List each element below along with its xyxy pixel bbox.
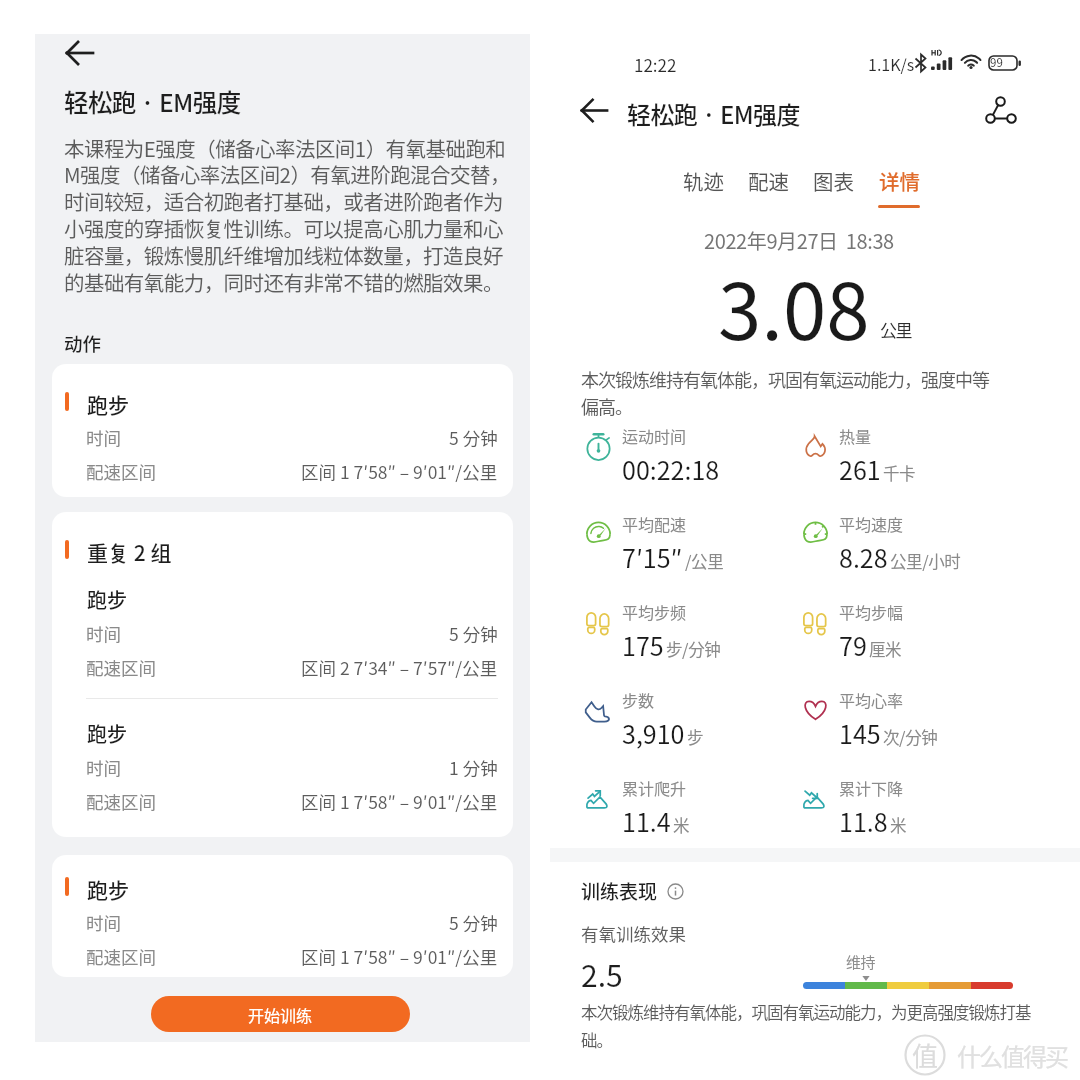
button[interactable]: Back (572, 88, 617, 133)
staticText: 千卡 (883, 461, 916, 485)
staticText: 动作 (64, 330, 102, 357)
staticText: 区间 1 7′58″ – 9′01″/公里 (301, 459, 498, 484)
staticText: 配速区间 (86, 944, 156, 969)
button[interactable]: 训练表现 (581, 877, 684, 905)
staticText: 跑步 (87, 874, 129, 904)
staticText: 累计下降 (839, 776, 904, 799)
staticText: 5 分钟 (449, 621, 498, 646)
staticText: 00:22:18 (622, 451, 720, 487)
staticText: 时间 (86, 910, 121, 935)
staticText: 步/分钟 (666, 637, 721, 661)
staticText: 时间 (86, 755, 121, 780)
staticText: 平均步频 (622, 600, 687, 623)
staticText: 轻松跑 · EM强度 (627, 96, 800, 131)
staticText: 时间 (86, 425, 121, 450)
staticText: 厘米 (869, 637, 902, 661)
staticText: 轻松跑 · EM强度 (64, 84, 241, 119)
staticText: 平均心率 (839, 688, 904, 711)
staticText: 时间 (86, 621, 121, 646)
staticText: 什么值得买 (957, 1038, 1067, 1073)
staticText: 2.5 (581, 952, 623, 995)
staticText: 配速区间 (86, 789, 156, 814)
staticText: 平均速度 (839, 512, 904, 535)
staticText: /公里 (685, 549, 724, 573)
staticText: 12:22 (634, 52, 677, 77)
staticText: 配速区间 (86, 459, 156, 484)
button[interactable]: 重复 2 组 (52, 512, 513, 837)
staticText: 本课程为E强度（储备心率法区间1）有氧基础跑和 M强度（储备心率法区间2）有氧进… (64, 133, 510, 297)
staticText: 区间 1 7′58″ – 9′01″/公里 (301, 944, 498, 969)
staticText: 本次锻炼维持有氧体能，巩固有氧运动能力，强度中等 偏高。 (581, 366, 989, 420)
button[interactable]: 图表 (801, 166, 866, 205)
staticText: 步数 (622, 688, 655, 711)
staticText: 平均配速 (622, 512, 687, 535)
other: Info (667, 883, 684, 900)
staticText: 11.4 (622, 803, 671, 839)
staticText: 详情 (879, 166, 920, 196)
button[interactable]: Share (976, 87, 1022, 133)
staticText: 累计爬升 (622, 776, 687, 799)
button[interactable]: 配速 (736, 166, 801, 205)
staticText: 维持 (846, 951, 875, 973)
button[interactable]: 开始训练 (151, 996, 410, 1032)
staticText: 175 (622, 627, 664, 663)
staticText: 区间 2 7′34″ – 7′57″/公里 (301, 655, 498, 680)
staticText: 7′15″ (622, 539, 683, 575)
staticText: 米 (890, 813, 907, 837)
staticText: 11.8 (839, 803, 888, 839)
staticText: 2022年9月27日 18:38 (704, 226, 894, 255)
staticText: 5 分钟 (449, 910, 498, 935)
staticText: 79 (839, 627, 867, 663)
staticText: 5 分钟 (449, 425, 498, 450)
button[interactable]: 跑步 (52, 364, 513, 497)
staticText: 重复 2 组 (87, 537, 172, 567)
staticText: 1 分钟 (449, 755, 498, 780)
staticText: 本次锻炼维持有氧体能，巩固有氧运动能力，为更高强度锻炼打基 础。 (581, 1000, 1031, 1051)
staticText: 米 (673, 813, 690, 837)
staticText: 公里 (880, 317, 911, 342)
staticText: 跑步 (87, 389, 129, 419)
staticText: 跑步 (87, 585, 127, 614)
staticText: 99 (990, 54, 1003, 71)
staticText: 3.08 (718, 250, 870, 363)
staticText: 有氧训练效果 (581, 921, 686, 946)
staticText: 公里/小时 (890, 549, 961, 573)
staticText: 运动时间 (622, 424, 687, 447)
staticText: 跑步 (87, 719, 127, 748)
button[interactable]: 详情 (866, 166, 932, 208)
staticText: 261 (839, 451, 881, 487)
staticText: 平均步幅 (839, 600, 904, 623)
staticText: 145 (839, 715, 881, 751)
staticText: 开始训练 (248, 1003, 313, 1026)
button[interactable]: 轨迹 (671, 166, 736, 205)
staticText: 值 (912, 1036, 939, 1074)
staticText: 1.1K/s (868, 52, 915, 75)
staticText: 8.28 (839, 539, 888, 575)
staticText: 3,910 (622, 715, 685, 751)
staticText: 配速 (748, 166, 789, 196)
staticText: 区间 1 7′58″ – 9′01″/公里 (301, 789, 498, 814)
staticText: 图表 (813, 166, 854, 196)
button[interactable]: 跑步 (52, 855, 513, 977)
staticText: 热量 (839, 424, 872, 447)
staticText: 步 (687, 725, 704, 749)
staticText: 次/分钟 (883, 725, 938, 749)
staticText: 轨迹 (683, 166, 724, 196)
button[interactable]: Back (58, 31, 102, 75)
staticText: 训练表现 (581, 877, 658, 905)
staticText: 配速区间 (86, 655, 156, 680)
